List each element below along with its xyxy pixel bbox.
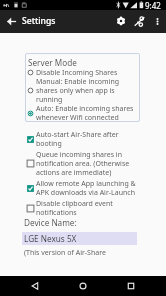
button[interactable]: Settings (111, 11, 130, 30)
staticText: Server Mode (28, 57, 77, 68)
button[interactable]: Share (129, 11, 149, 31)
button[interactable]: LGE Nexus 5X (22, 232, 137, 245)
button[interactable]: Disable clipboard event notifications (27, 199, 139, 217)
button[interactable]: Manual: Enable incoming shares only when… (27, 77, 139, 104)
button[interactable]: Disable Incoming Shares (27, 68, 139, 77)
staticText: Settings (22, 15, 56, 27)
staticText: Disable clipboard event notifications (36, 199, 139, 217)
button[interactable]: Recent apps (118, 276, 144, 296)
button[interactable]: Auto: Enable incoming shares whenever Wi… (27, 104, 139, 122)
staticText: Auto: Enable incoming shares whenever Wi… (36, 104, 139, 122)
staticText: 9:42 (145, 0, 161, 10)
staticText: Allow remote App launching & APK downloa… (36, 179, 139, 197)
button[interactable]: Queue incoming shares in notification ar… (27, 150, 139, 177)
button[interactable]: Auto-start Air-Share after booting (27, 130, 139, 148)
button[interactable]: Back (0, 10, 23, 33)
button[interactable]: More options (148, 12, 166, 30)
staticText: Auto-start Air-Share after booting (36, 130, 139, 148)
staticText: Device Name: (24, 217, 77, 228)
staticText: (This version of Air-Share (24, 248, 106, 258)
staticText: Queue incoming shares in notification ar… (36, 150, 139, 177)
button[interactable]: Back (22, 276, 48, 296)
button[interactable]: Home (70, 276, 96, 296)
staticText: Disable Incoming Shares (36, 68, 118, 77)
button[interactable]: Allow remote App launching & APK downloa… (27, 179, 139, 197)
staticText: Manual: Enable incoming shares only when… (36, 77, 139, 104)
staticText: LGE Nexus 5X (24, 233, 77, 244)
